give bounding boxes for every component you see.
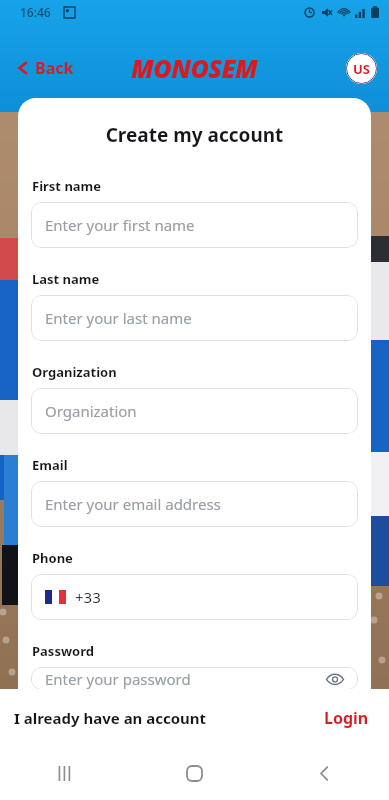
button[interactable]: Login (318, 703, 375, 733)
button[interactable]: Enter your password (31, 667, 358, 690)
staticText: Email (32, 456, 371, 474)
staticText: MONOSEM (131, 51, 258, 85)
staticText: Enter your last name (45, 308, 192, 328)
staticText: Last name (32, 270, 371, 288)
staticText: +33 (75, 587, 101, 607)
staticText: First name (32, 177, 371, 195)
staticText: Enter your password (45, 669, 191, 689)
staticText: Back (35, 57, 74, 79)
staticText: I already have an account (14, 708, 207, 728)
button[interactable]: Recent apps (0, 746, 129, 800)
staticText: Password (32, 642, 371, 660)
button[interactable]: Back (8, 51, 82, 85)
staticText: Phone (32, 549, 371, 567)
staticText: Organization (32, 363, 371, 381)
staticText: US (353, 60, 370, 78)
button[interactable]: I already have an account (14, 708, 318, 728)
staticText: Create my account (18, 122, 371, 148)
button[interactable]: +33 (31, 574, 358, 620)
button[interactable]: Enter your email address (31, 481, 358, 527)
staticText: Login (324, 707, 369, 729)
staticText: Organization (45, 401, 137, 421)
button[interactable]: Organization (31, 388, 358, 434)
staticText: 16:46 (20, 4, 51, 20)
button[interactable]: Enter your first name (31, 202, 358, 248)
button[interactable]: Back (259, 746, 389, 800)
staticText: Enter your first name (45, 215, 195, 235)
button[interactable]: Enter your last name (31, 295, 358, 341)
staticText: Enter your email address (45, 494, 221, 514)
button[interactable]: Home (129, 746, 259, 800)
button[interactable]: Show password (324, 668, 346, 690)
button[interactable]: Change language, US (346, 53, 377, 84)
